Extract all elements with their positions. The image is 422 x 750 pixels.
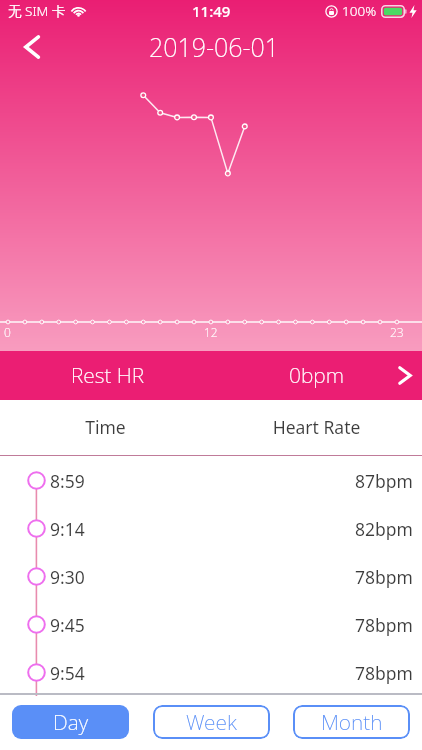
button[interactable]: Week (153, 705, 270, 739)
staticText: 11:49 (192, 1, 231, 21)
staticText: 9:45 (50, 613, 85, 637)
staticText: 0 (4, 324, 11, 340)
staticText: 2019-06-01 (149, 30, 280, 64)
staticText: 78bpm (355, 565, 413, 589)
button[interactable]: Back (13, 26, 51, 64)
staticText: 23 (390, 324, 404, 340)
staticText: Month (321, 708, 383, 737)
staticText: 78bpm (355, 613, 413, 637)
staticText: Rest HR (71, 361, 145, 390)
button[interactable]: 9:54 (0, 648, 422, 696)
button[interactable]: Day (12, 705, 129, 739)
staticText: 0bpm (289, 361, 344, 390)
staticText: 100% (342, 2, 377, 20)
staticText: 9:14 (50, 517, 85, 541)
button[interactable]: 9:30 (0, 552, 422, 600)
staticText: Day (53, 708, 88, 737)
staticText: 12 (204, 324, 218, 340)
staticText: 无 SIM 卡 (8, 2, 66, 20)
staticText: 82bpm (355, 517, 413, 541)
staticText: Heart Rate (211, 415, 422, 439)
button[interactable]: 9:45 (0, 600, 422, 648)
staticText: 9:54 (50, 661, 85, 685)
button[interactable]: 9:14 (0, 504, 422, 552)
staticText: 8:59 (50, 469, 85, 493)
button[interactable]: Month (293, 705, 410, 739)
button[interactable]: Rest HR (0, 351, 422, 400)
staticText: 9:30 (50, 565, 85, 589)
staticText: Week (186, 708, 237, 737)
staticText: Time (0, 415, 211, 439)
staticText: 87bpm (355, 469, 413, 493)
button[interactable]: 8:59 (0, 456, 422, 504)
staticText: 78bpm (355, 661, 413, 685)
